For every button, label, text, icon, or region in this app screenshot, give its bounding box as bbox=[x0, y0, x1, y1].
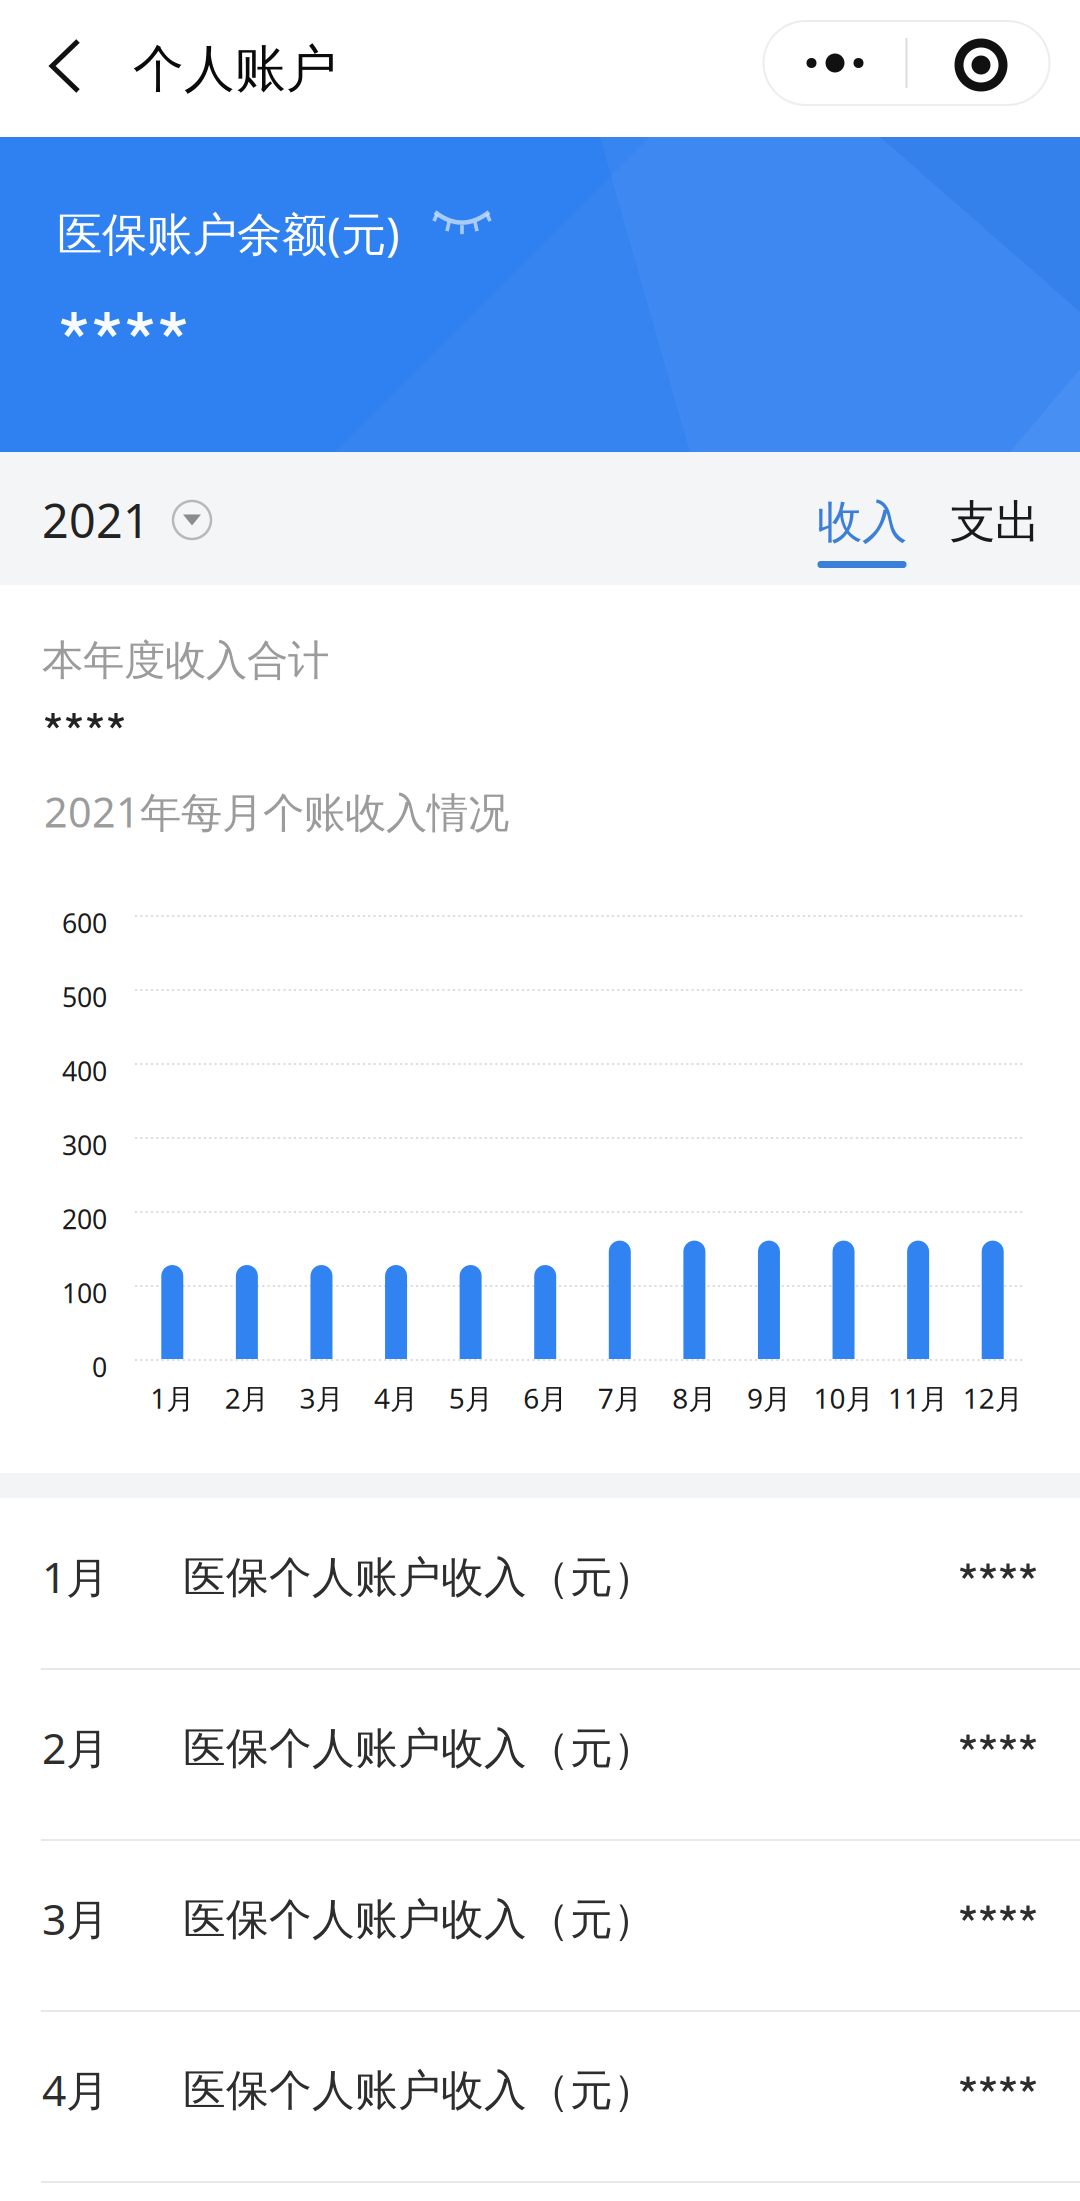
button[interactable]: 2月 bbox=[0, 1669, 1080, 1840]
staticText: 医保个人账户收入（元） bbox=[183, 1722, 656, 1775]
staticText: 收入 bbox=[817, 494, 907, 550]
staticText: 10月 bbox=[813, 1379, 873, 1417]
staticText: 2021年每月个账收入情况 bbox=[44, 784, 509, 839]
staticText: 2月 bbox=[225, 1379, 269, 1417]
staticText: 100 bbox=[62, 1275, 107, 1311]
staticText: 4月 bbox=[374, 1379, 418, 1417]
staticText: 2021 bbox=[42, 489, 150, 551]
staticText: 4月 bbox=[42, 2061, 109, 2118]
button[interactable]: More options bbox=[765, 22, 1051, 106]
staticText: 医保个人账户收入（元） bbox=[183, 2064, 656, 2117]
button[interactable]: 1月 bbox=[0, 1498, 1080, 1669]
button[interactable]: 支出 bbox=[939, 480, 1051, 585]
staticText: 600 bbox=[62, 905, 107, 941]
staticText: 9月 bbox=[747, 1379, 791, 1417]
staticText: 0 bbox=[92, 1349, 107, 1385]
staticText: 200 bbox=[62, 1201, 107, 1237]
button[interactable]: Show balance bbox=[432, 210, 492, 236]
button[interactable]: 2021 bbox=[42, 489, 212, 551]
staticText: 3月 bbox=[42, 1890, 109, 1947]
staticText: 医保个人账户收入（元） bbox=[183, 1551, 656, 1604]
staticText: 6月 bbox=[523, 1379, 567, 1417]
staticText: 2月 bbox=[42, 1719, 109, 1776]
staticText: 个人账户 bbox=[133, 38, 337, 100]
staticText: 500 bbox=[62, 979, 107, 1015]
button[interactable]: 收入 bbox=[806, 480, 918, 585]
staticText: 12月 bbox=[963, 1379, 1023, 1417]
staticText: 400 bbox=[62, 1053, 107, 1089]
staticText: 1月 bbox=[150, 1379, 194, 1417]
staticText: 医保个人账户收入（元） bbox=[183, 1893, 656, 1946]
staticText: 11月 bbox=[888, 1379, 948, 1417]
staticText: 1月 bbox=[42, 1548, 109, 1605]
staticText: 3月 bbox=[299, 1379, 343, 1417]
staticText: 7月 bbox=[598, 1379, 642, 1417]
staticText: 8月 bbox=[672, 1379, 716, 1417]
button[interactable]: 4月 bbox=[0, 2011, 1080, 2182]
staticText: 300 bbox=[62, 1127, 107, 1163]
button[interactable]: Back bbox=[49, 38, 81, 94]
staticText: 5月 bbox=[449, 1379, 493, 1417]
staticText: 本年度收入合计 bbox=[42, 635, 329, 686]
staticText: 医保账户余额(元) bbox=[57, 203, 400, 263]
button[interactable]: 3月 bbox=[0, 1840, 1080, 2011]
staticText: 支出 bbox=[950, 494, 1040, 550]
